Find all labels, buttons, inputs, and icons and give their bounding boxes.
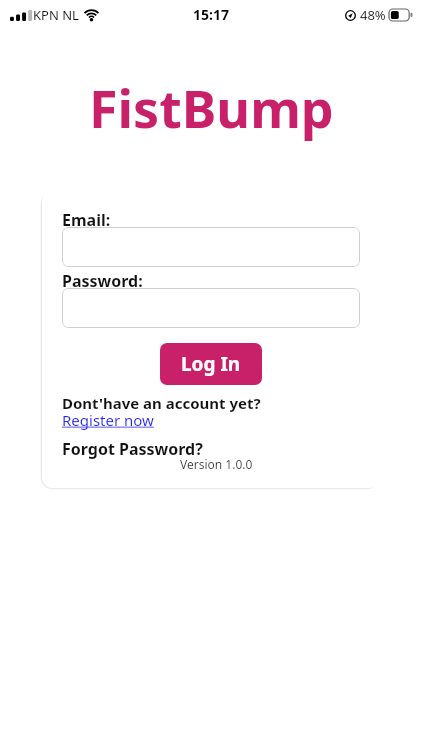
button[interactable]: Forgot Password?: [62, 438, 203, 460]
staticText: 15:17: [193, 5, 229, 24]
button[interactable]: [62, 227, 360, 267]
staticText: 48%: [360, 6, 386, 24]
staticText: Version 1.0.0: [180, 456, 253, 472]
staticText: Dont'have an account yet?: [62, 393, 261, 413]
button[interactable]: [62, 288, 360, 328]
staticText: Password:: [62, 270, 143, 292]
staticText: FistBump: [89, 72, 334, 143]
staticText: KPN NL: [33, 6, 79, 24]
staticText: Log In: [181, 351, 241, 377]
button[interactable]: Register now: [62, 410, 154, 430]
staticText: Email:: [62, 209, 111, 231]
staticText: Forgot Password?: [62, 438, 203, 460]
staticText: Register now: [62, 410, 154, 430]
button[interactable]: Log In: [160, 343, 262, 385]
